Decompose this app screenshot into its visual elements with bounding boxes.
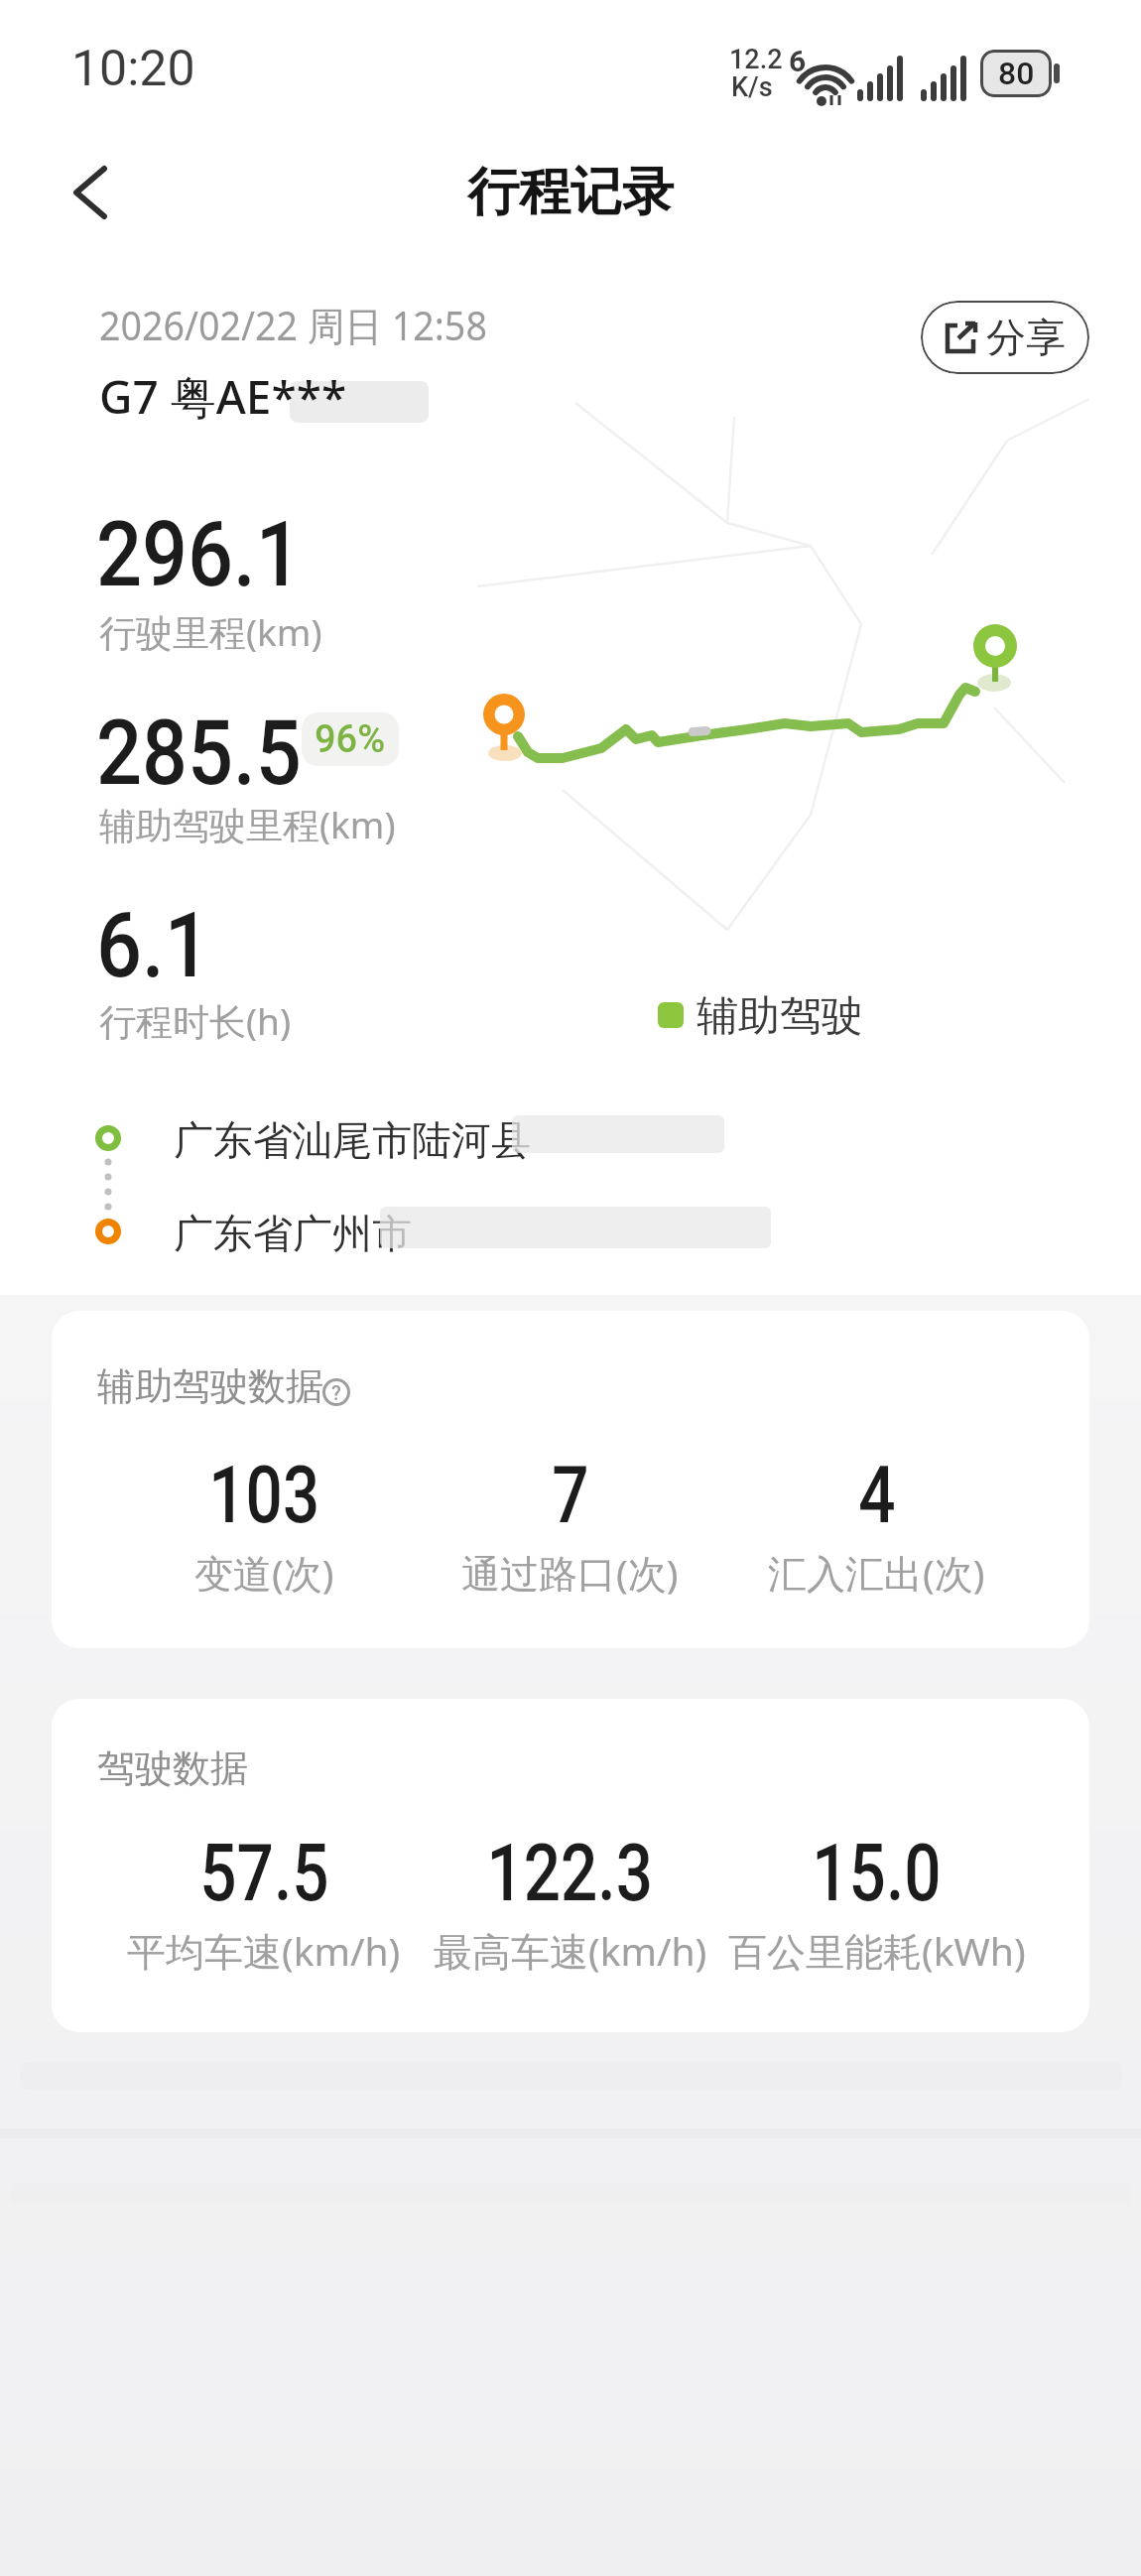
staticText: G7 粤AE***: [99, 365, 347, 428]
staticText: 2026/02/22 周日 12:58: [99, 298, 487, 352]
staticText: 变道(次): [194, 1546, 334, 1599]
button[interactable]: ?: [322, 1378, 350, 1406]
staticText: 辅助驾驶: [697, 990, 863, 1043]
staticText: 285.5: [96, 702, 302, 806]
staticText: 分享: [986, 313, 1066, 362]
staticText: ?: [331, 1381, 341, 1404]
staticText: 最高车速(km/h): [434, 1924, 707, 1977]
staticText: 辅助驾驶里程(km): [99, 799, 396, 849]
staticText: 汇入汇出(次): [768, 1546, 985, 1599]
staticText: 122.3: [487, 1827, 653, 1920]
staticText: 12.2: [729, 44, 783, 75]
staticText: 296.1: [96, 503, 302, 607]
staticText: 6: [789, 44, 807, 78]
staticText: 57.5: [200, 1827, 329, 1920]
staticText: K/s: [731, 71, 773, 103]
staticText: 6.1: [96, 894, 211, 998]
staticText: 行驶里程(km): [99, 606, 322, 657]
button[interactable]: 分享: [921, 301, 1089, 374]
staticText: 广东省广州市: [174, 1209, 412, 1258]
staticText: 平均车速(km/h): [127, 1924, 401, 1977]
staticText: 80: [998, 55, 1035, 92]
staticText: 辅助驾驶数据: [97, 1362, 323, 1410]
staticText: 15.0: [812, 1827, 941, 1920]
staticText: 行程时长(h): [99, 995, 292, 1046]
button[interactable]: [55, 149, 134, 228]
staticText: 96%: [315, 717, 386, 762]
staticText: 驾驶数据: [97, 1744, 248, 1792]
staticText: 4: [858, 1449, 896, 1542]
staticText: 10:20: [71, 40, 195, 98]
staticText: 百公里能耗(kWh): [728, 1924, 1026, 1977]
staticText: 通过路口(次): [461, 1546, 679, 1599]
staticText: 103: [209, 1449, 320, 1542]
staticText: 广东省汕尾市陆河县: [174, 1115, 531, 1165]
staticText: 7: [552, 1449, 589, 1542]
staticText: 行程记录: [467, 160, 674, 225]
